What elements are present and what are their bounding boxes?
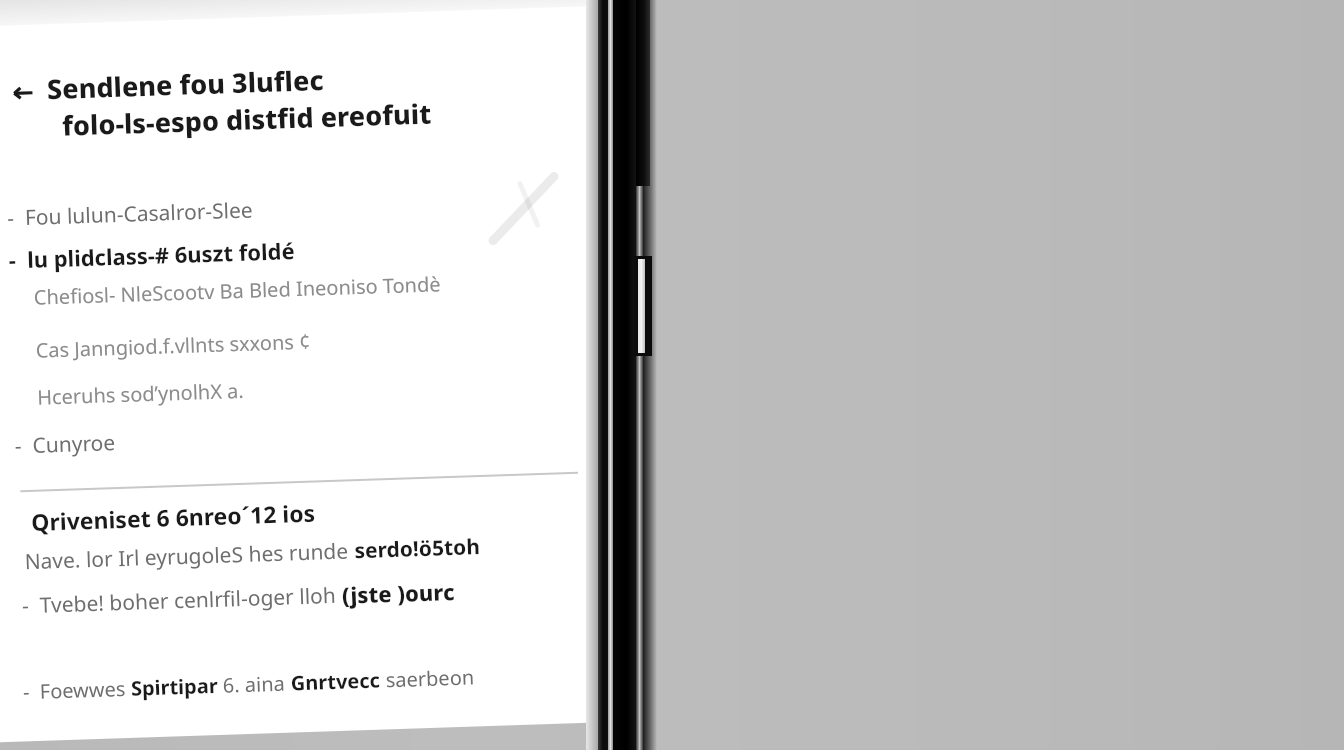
staticText: Gnrtvecc [290,666,386,696]
staticText: saerbeon [385,663,475,693]
staticText: Spirtipar [130,672,223,702]
button[interactable]: Back [2,74,44,112]
staticText: serdo!ö5toh [354,532,481,565]
staticText: Qriveniset 6 6nreo´12 ios [31,497,316,537]
staticText: - lu plidclass-# 6uszt foldé [8,235,296,275]
staticText: - Foewwes [22,675,131,705]
staticText: Chefiosl- NleScootv Ba Bled Ineoniso Ton… [33,270,441,311]
staticText: 6. aina [222,669,291,699]
button[interactable]: Volume button [634,256,652,356]
staticText: Hceruhs sodʹynolhX a. [37,377,244,411]
button[interactable]: Power button [636,0,650,186]
staticText: folo-ls-espo distfid ereofuit [62,94,433,144]
staticText: - Cunyroe [14,428,116,460]
staticText: - Tvebe! boher cenlrfil-oger lloh [22,581,342,620]
staticText: Cas Janngiod.f.vllnts sxxons ¢ [35,328,311,364]
staticText: - Fou lulun-Casalror-Slee [7,195,254,233]
staticText: Nave. lor Irl eyrugoleS hes runde [24,536,355,576]
staticText: (jste )ourc [341,576,455,610]
staticText: Sendlene fou 3luflec [46,61,324,107]
